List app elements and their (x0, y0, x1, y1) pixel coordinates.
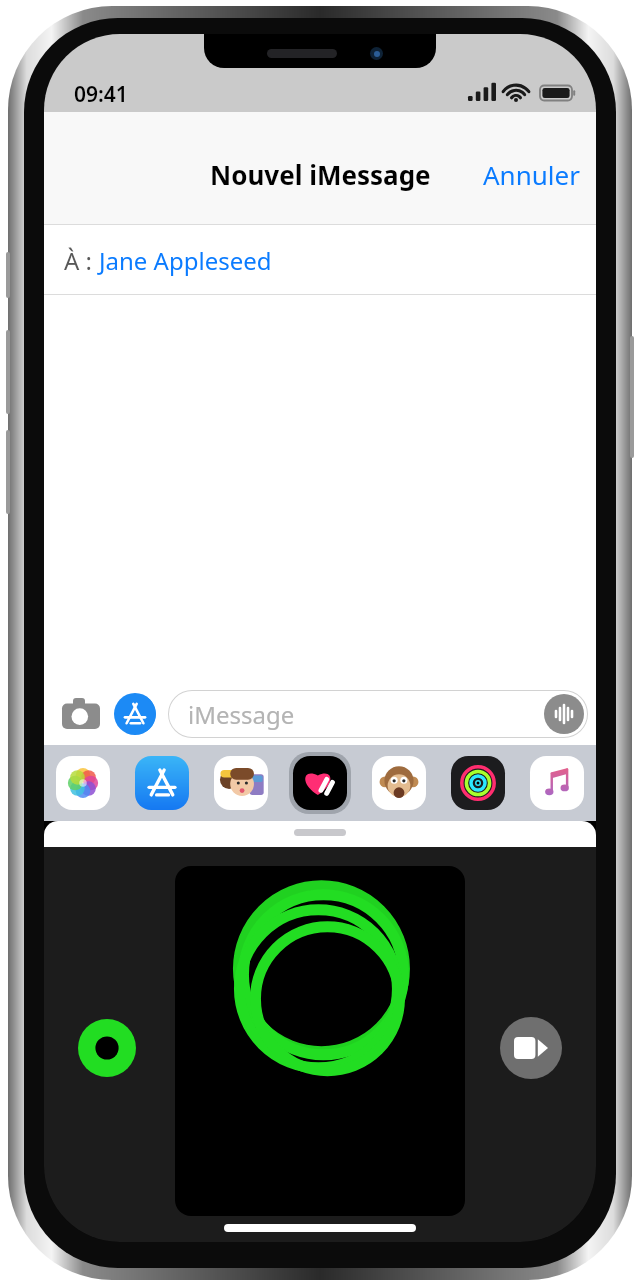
staticText: Annuler (483, 157, 580, 192)
staticText: 09:41 (74, 80, 128, 109)
button[interactable]: Photos (52, 752, 114, 814)
button[interactable]: Memoji (210, 752, 272, 814)
button[interactable]: Music (526, 752, 588, 814)
button[interactable]: Activity (447, 752, 509, 814)
staticText: Nouvel iMessage (210, 157, 431, 192)
button[interactable]: Send video (500, 1017, 562, 1079)
button[interactable] (175, 866, 465, 1216)
button[interactable]: iMessage (168, 690, 588, 738)
button[interactable]: Colour: green (78, 1019, 136, 1077)
button[interactable]: Annuler (467, 147, 596, 202)
button[interactable]: Monkey sticker (368, 752, 430, 814)
staticText: Jane Appleseed (99, 244, 272, 277)
staticText: iMessage (188, 698, 295, 731)
staticText: À : (64, 244, 99, 277)
button[interactable]: Camera (58, 691, 104, 737)
button[interactable]: À : (44, 225, 596, 295)
button[interactable]: Record audio (544, 694, 584, 734)
button[interactable]: App Store (112, 691, 158, 737)
button[interactable]: Digital Touch (289, 752, 351, 814)
button[interactable]: App Store (131, 752, 193, 814)
